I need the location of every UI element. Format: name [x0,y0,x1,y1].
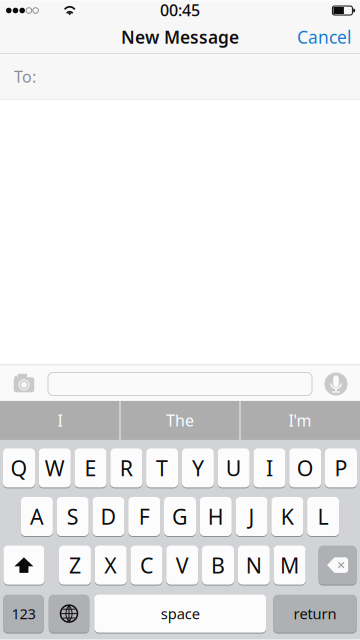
staticText: Z [69,551,81,579]
staticText: New Message [121,25,239,48]
button[interactable]: H [200,496,232,536]
button[interactable]: U [218,448,250,488]
button[interactable]: B [202,545,234,585]
staticText: V [176,551,189,579]
button[interactable]: C [130,545,162,585]
button[interactable]: T [146,448,178,488]
button[interactable]: Take photo [11,365,37,402]
staticText: L [318,502,329,531]
button[interactable]: Shift [3,545,44,585]
staticText: O [297,454,314,482]
button[interactable]: W [39,448,71,488]
staticText: 00:45 [160,0,200,21]
staticText: I [57,410,62,431]
staticText: C [140,551,153,579]
button[interactable]: P [325,448,357,488]
staticText: H [208,502,224,531]
staticText: U [226,454,242,482]
button[interactable]: Y [182,448,214,488]
staticText: Cancel [297,25,351,48]
button[interactable]: I [0,401,119,440]
staticText: return [293,604,336,623]
button[interactable]: J [236,496,268,536]
button[interactable]: K [271,496,303,536]
button[interactable]: The [120,401,239,440]
button[interactable]: Cancel [288,20,360,53]
button[interactable]: Next keyboard [49,594,89,633]
staticText: D [100,502,116,531]
staticText: W [45,454,65,482]
button[interactable]: R [110,448,142,488]
staticText: Q [10,454,27,482]
button[interactable]: Delete [319,545,357,585]
button[interactable]: I'm [240,401,359,440]
staticText: R [120,454,133,482]
staticText: A [30,502,44,531]
staticText: space [161,604,200,623]
button[interactable]: Z [59,545,91,585]
staticText: P [334,454,347,482]
button[interactable]: S [57,496,89,536]
button[interactable]: A [21,496,53,536]
staticText: To: [14,66,36,87]
staticText: T [156,454,168,482]
staticText: K [281,502,294,531]
button[interactable]: N [238,545,270,585]
staticText: S [67,502,79,531]
staticText: M [280,551,299,579]
button[interactable]: D [92,496,124,536]
staticText: 123 [11,604,35,623]
button[interactable]: V [166,545,198,585]
button[interactable]: L [307,496,339,536]
button[interactable]: Dictate [322,365,350,402]
staticText: Y [192,454,204,482]
staticText: I'm [288,410,311,431]
staticText: N [246,551,262,579]
button[interactable]: O [289,448,321,488]
staticText: The [166,410,194,431]
button[interactable]: F [128,496,160,536]
staticText: F [139,502,150,531]
button[interactable]: To: [0,54,360,99]
button[interactable]: Q [3,448,35,488]
staticText: G [172,502,188,531]
button[interactable]: 123 [3,594,44,633]
staticText: E [85,454,97,482]
staticText: B [211,551,225,579]
button[interactable]: E [75,448,107,488]
staticText: X [104,551,117,579]
button[interactable]: X [95,545,127,585]
staticText: I [266,454,273,482]
button[interactable]: I [253,448,285,488]
button[interactable]: return [273,594,357,633]
button[interactable]: M [274,545,306,585]
staticText: J [249,502,255,531]
button[interactable]: space [94,594,266,633]
button[interactable]: G [164,496,196,536]
